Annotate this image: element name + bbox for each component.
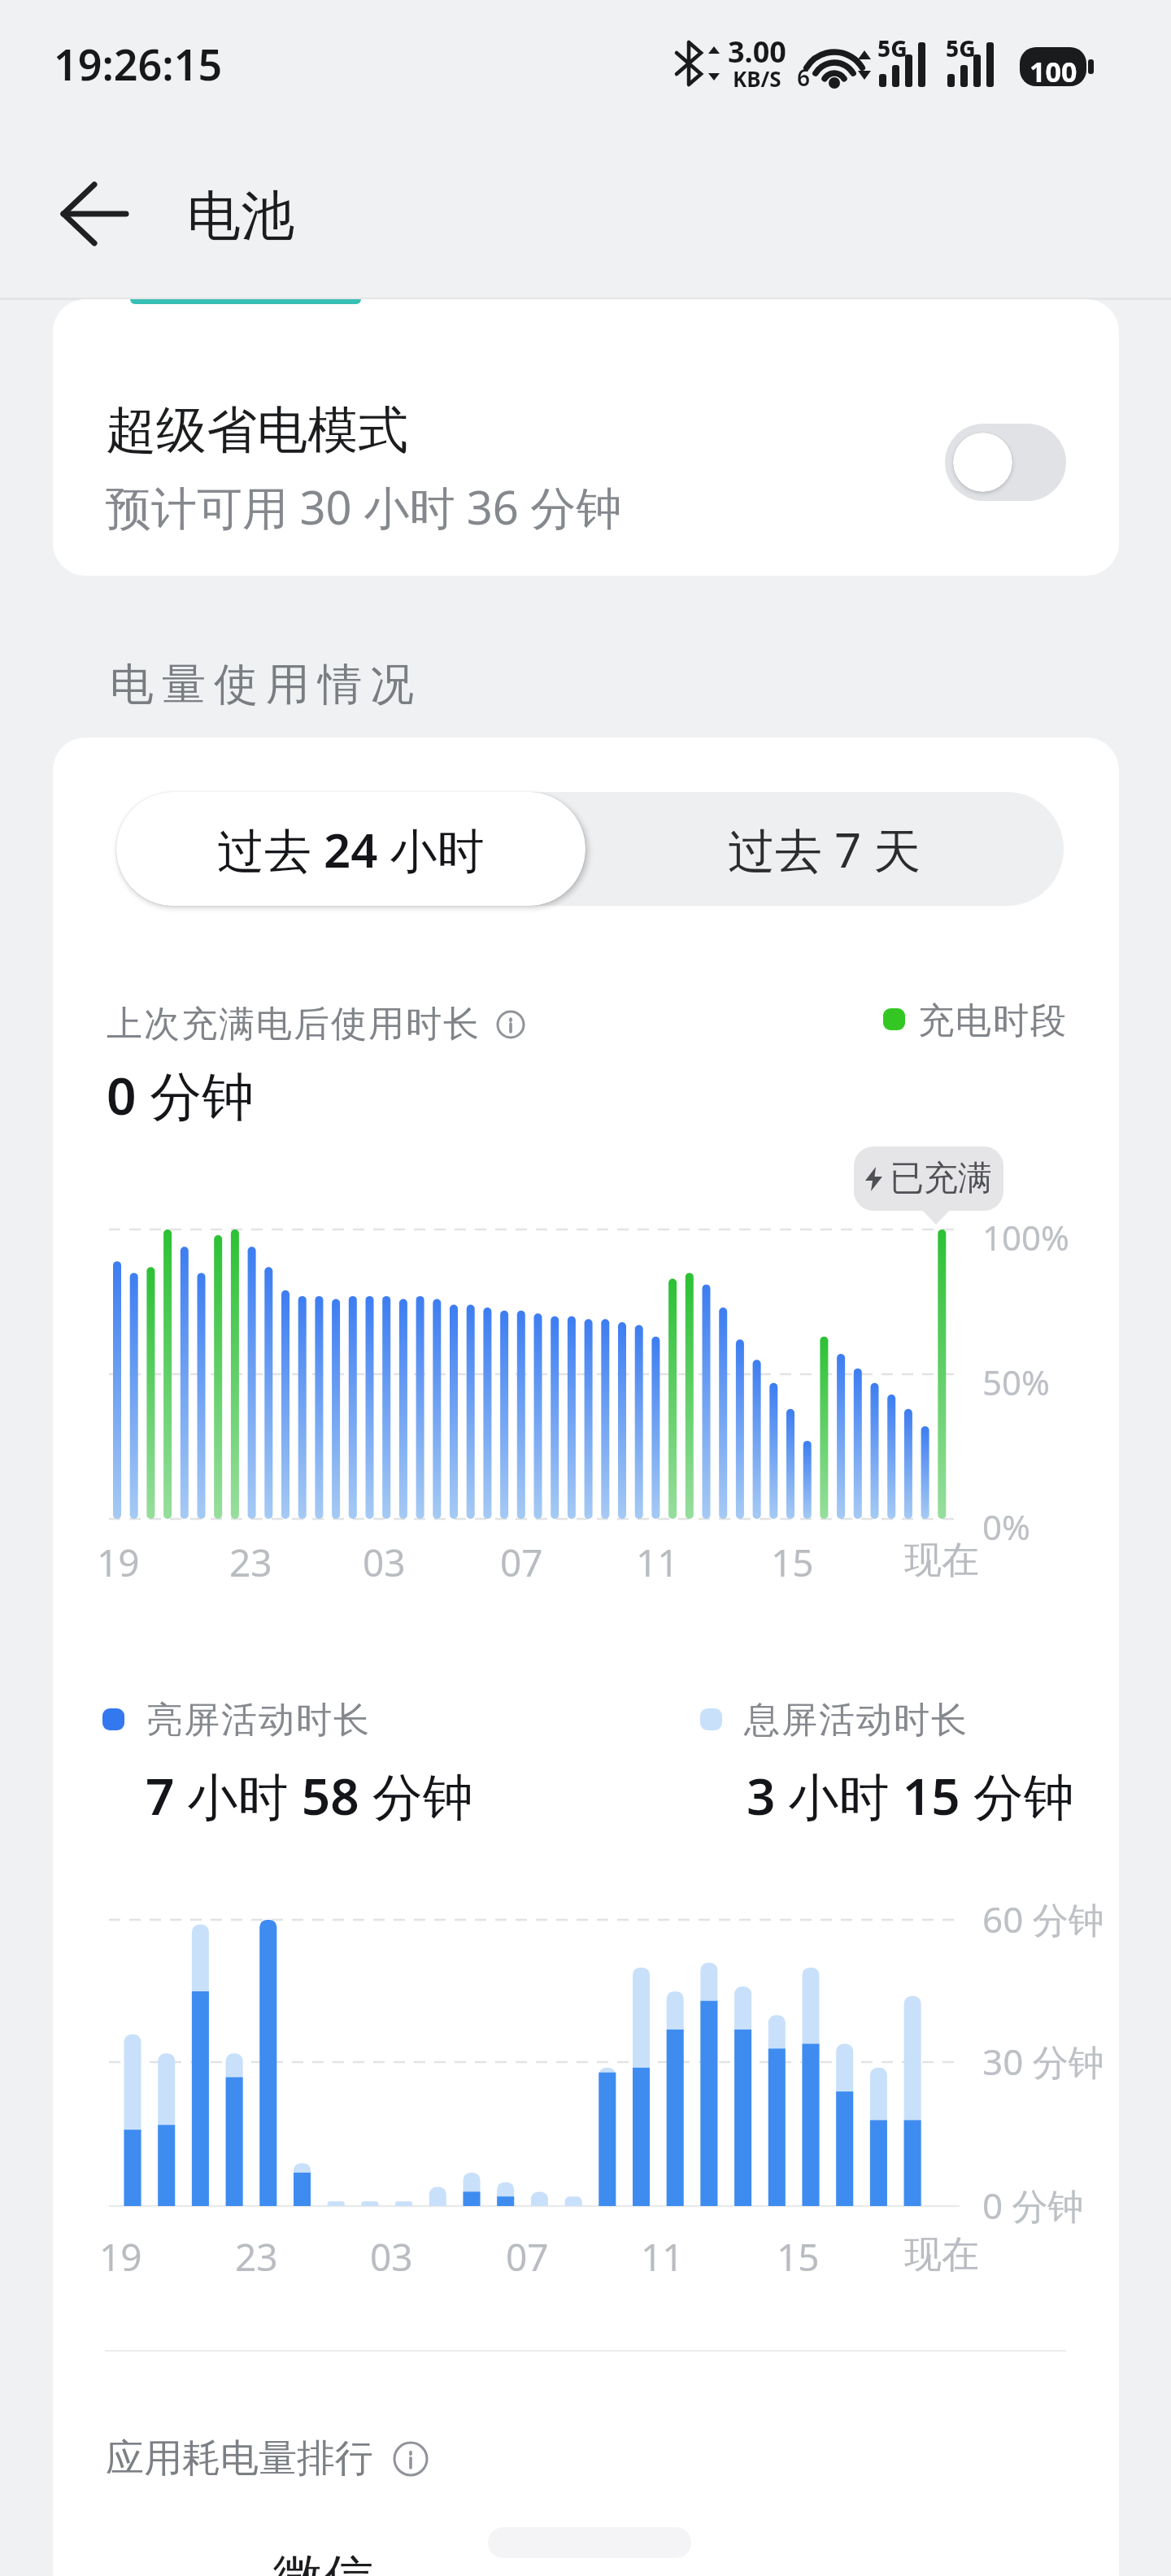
staticText: 5G bbox=[877, 33, 908, 63]
staticText: 100 bbox=[1030, 53, 1077, 90]
staticText: 预计可用 30 小时 36 分钟 bbox=[106, 476, 622, 537]
staticText: 已充满 bbox=[890, 1157, 992, 1200]
staticText: 19 bbox=[99, 2231, 142, 2282]
staticText: KB/S bbox=[733, 64, 781, 93]
staticText: 0 分钟 bbox=[107, 1060, 255, 1130]
staticText: 0% bbox=[982, 1503, 1030, 1550]
button[interactable]: 过去 7 天 bbox=[585, 792, 1064, 906]
staticText: 过去 7 天 bbox=[728, 817, 921, 881]
button[interactable] bbox=[39, 171, 137, 257]
staticText: 50% bbox=[982, 1359, 1050, 1405]
staticText: 7 小时 58 分钟 bbox=[146, 1761, 473, 1830]
staticText: 充电时段 bbox=[917, 999, 1067, 1039]
staticText: 过去 24 小时 bbox=[217, 817, 485, 881]
staticText: 0 分钟 bbox=[982, 2181, 1084, 2230]
staticText: 100% bbox=[982, 1214, 1069, 1260]
staticText: 超级省电模式 bbox=[106, 398, 408, 462]
staticText: 07 bbox=[500, 1537, 543, 1588]
staticText: 3.00 bbox=[728, 32, 786, 72]
button[interactable]: 过去 24 小时 bbox=[116, 792, 585, 906]
staticText: 07 bbox=[506, 2231, 549, 2282]
staticText: 现在 bbox=[904, 1537, 979, 1584]
staticText: 息屏活动时长 bbox=[743, 1698, 968, 1740]
staticText: 11 bbox=[636, 1537, 679, 1588]
staticText: 60 分钟 bbox=[982, 1895, 1104, 1943]
staticText: 亮屏活动时长 bbox=[146, 1698, 370, 1740]
staticText: 应用耗电量排行 bbox=[106, 2435, 373, 2482]
staticText: 15 bbox=[771, 1537, 814, 1588]
staticText: 5G bbox=[946, 33, 976, 63]
staticText: 微信 bbox=[272, 2547, 373, 2576]
staticText: 3 小时 15 分钟 bbox=[747, 1761, 1074, 1830]
button[interactable] bbox=[945, 424, 1066, 501]
staticText: 19:26:15 bbox=[54, 35, 223, 93]
staticText: 15 bbox=[777, 2231, 820, 2282]
staticText: 23 bbox=[229, 1537, 272, 1588]
staticText: 23 bbox=[235, 2231, 278, 2282]
staticText: 电量使用情况 bbox=[106, 657, 418, 712]
staticText: 电池 bbox=[187, 182, 294, 250]
staticText: 现在 bbox=[904, 2231, 979, 2278]
staticText: 上次充满电后使用时长 bbox=[106, 1002, 480, 1046]
staticText: 19 bbox=[97, 1537, 140, 1588]
staticText: 11 bbox=[641, 2231, 684, 2282]
staticText: 03 bbox=[370, 2231, 413, 2282]
staticText: 03 bbox=[363, 1537, 406, 1588]
button[interactable]: 微信 bbox=[106, 2547, 1066, 2576]
staticText: 6 bbox=[797, 62, 811, 93]
staticText: 30 分钟 bbox=[982, 2037, 1104, 2086]
